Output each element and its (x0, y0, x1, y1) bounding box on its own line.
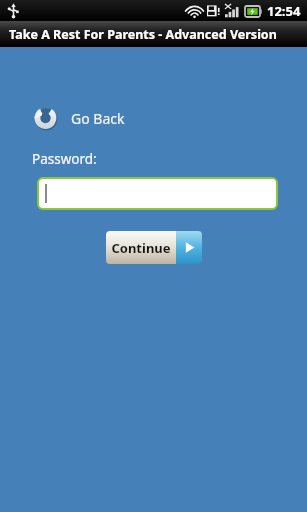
staticText: Take A Rest For Parents - Advanced Versi… (9, 26, 277, 43)
staticText: Password: (32, 150, 97, 168)
button[interactable]: Continue (106, 231, 202, 264)
staticText: Go Back (71, 109, 125, 128)
button[interactable]: Go Back (32, 105, 125, 131)
staticText: 12:54 (267, 2, 301, 20)
staticText: Continue (111, 239, 171, 257)
button[interactable] (39, 179, 276, 208)
